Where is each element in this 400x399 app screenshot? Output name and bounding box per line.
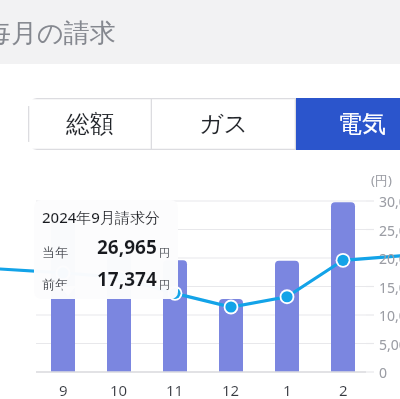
staticText: 12 — [222, 380, 240, 399]
staticText: 0 — [379, 363, 388, 382]
staticText: 10 — [110, 380, 128, 399]
button[interactable]: 総額 — [28, 98, 152, 150]
staticText: 当年 — [42, 244, 68, 260]
staticText: 20,0 — [379, 249, 400, 268]
staticText: 2024年9月請求分 — [42, 207, 160, 227]
staticText: 26,965 — [97, 234, 157, 260]
staticText: 円 — [159, 246, 170, 260]
staticText: 電気 — [338, 109, 386, 139]
staticText: 30,0 — [379, 192, 400, 211]
staticText: 2 — [339, 380, 348, 399]
staticText: 11 — [166, 380, 184, 399]
staticText: 総額 — [66, 109, 114, 139]
button[interactable]: 電気 — [296, 98, 400, 150]
staticText: ガス — [199, 109, 249, 139]
staticText: 17,374 — [97, 266, 157, 292]
staticText: 5,00 — [379, 335, 400, 354]
staticText: 1 — [283, 380, 292, 399]
staticText: 15,0 — [379, 278, 400, 297]
staticText: 10,0 — [379, 306, 400, 325]
staticText: (円) — [371, 171, 392, 189]
staticText: 前年 — [42, 276, 68, 292]
button[interactable]: ガス — [152, 98, 296, 150]
staticText: 円 — [159, 278, 170, 292]
staticText: 9 — [59, 380, 68, 399]
staticText: 25,0 — [379, 221, 400, 240]
staticText: 毎月の請求 — [0, 17, 116, 50]
